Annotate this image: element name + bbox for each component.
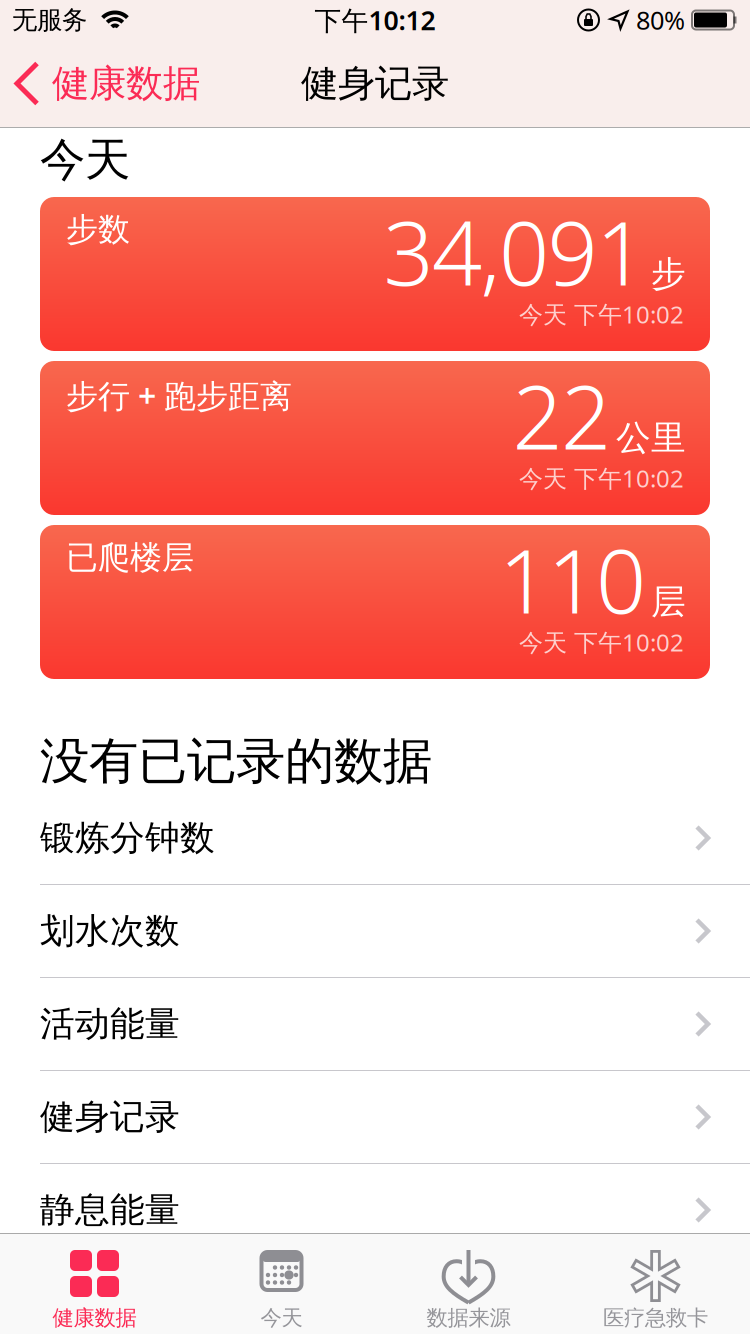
button[interactable]: 健康数据	[0, 61, 200, 106]
button[interactable]: 数据来源	[375, 1234, 562, 1334]
button[interactable]: 锻炼分钟数	[0, 792, 750, 885]
staticText: 80%	[636, 3, 685, 37]
staticText: 今天 下午10:02	[519, 298, 684, 330]
staticText: 步数	[66, 210, 130, 249]
staticText: 健康数据	[52, 1305, 136, 1331]
staticText: 健身记录	[40, 1096, 180, 1138]
staticText: 步	[651, 253, 686, 295]
staticText: 今天	[40, 132, 130, 188]
staticText: 锻炼分钟数	[40, 817, 215, 859]
staticText: 健身记录	[301, 61, 449, 106]
staticText: 数据来源	[426, 1305, 510, 1331]
staticText: 层	[651, 581, 686, 623]
button[interactable]: 今天	[188, 1234, 375, 1334]
staticText: 34,091	[383, 193, 646, 310]
staticText: 活动能量	[40, 1003, 180, 1045]
button[interactable]: 健身记录	[0, 1071, 750, 1164]
staticText: 健康数据	[52, 61, 200, 106]
staticText: 已爬楼层	[66, 538, 194, 577]
staticText: 步行 + 跑步距离	[66, 374, 292, 416]
staticText: 静息能量	[40, 1189, 180, 1231]
staticText: 公里	[616, 417, 686, 459]
staticText: 今天 下午10:02	[519, 626, 684, 658]
button[interactable]: 健康数据	[1, 1234, 188, 1334]
button[interactable]: 已爬楼层	[40, 525, 710, 679]
button[interactable]: 活动能量	[0, 978, 750, 1071]
staticText: 没有已记录的数据	[40, 731, 432, 792]
staticText: 下午10:12	[314, 2, 435, 38]
staticText: 今天	[260, 1305, 302, 1331]
staticText: 无服务	[12, 4, 87, 35]
staticText: 110	[499, 521, 646, 638]
button[interactable]: 步行 + 跑步距离	[40, 361, 710, 515]
staticText: 医疗急救卡	[603, 1305, 708, 1331]
staticText: 22	[512, 357, 611, 474]
button[interactable]: 步数	[40, 197, 710, 351]
button[interactable]: 划水次数	[0, 885, 750, 978]
staticText: 划水次数	[40, 910, 180, 952]
button[interactable]: 静息能量	[0, 1164, 750, 1257]
button[interactable]: 医疗急救卡	[562, 1234, 749, 1334]
staticText: 今天 下午10:02	[519, 462, 684, 494]
